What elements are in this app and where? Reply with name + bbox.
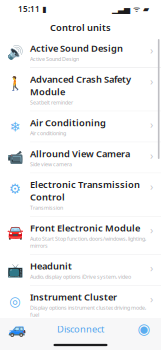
staticText: Seatbelt reminder xyxy=(30,99,73,106)
staticText: › xyxy=(150,43,153,57)
staticText: › xyxy=(150,74,153,88)
button[interactable]: 🚶 xyxy=(0,68,161,111)
staticText: Allround View Camera xyxy=(30,147,130,160)
button[interactable]: 📺 xyxy=(0,255,161,286)
staticText: Side view camera xyxy=(30,161,72,168)
staticText: ◎ xyxy=(9,294,21,309)
staticText: 📺 xyxy=(6,263,23,278)
button[interactable]: Vehicle xyxy=(2,318,32,340)
button[interactable]: ◎ xyxy=(0,286,161,331)
staticText: Disconnect xyxy=(57,323,104,335)
staticText: 🚙 xyxy=(8,321,26,337)
staticText: › xyxy=(150,223,153,237)
staticText: ▁▃▅ ᯤ ▰ xyxy=(112,4,149,14)
staticText: ❄ xyxy=(9,119,20,134)
staticText: 15:11 ▮ xyxy=(18,4,46,14)
button[interactable]: ❄ xyxy=(0,111,161,142)
staticText: Audio, display options iDrive system, vi… xyxy=(30,273,131,280)
button[interactable]: ⚙ xyxy=(0,173,161,217)
staticText: Auto Start Stop function, doors/windows,… xyxy=(30,235,146,249)
staticText: Air conditioning xyxy=(30,130,66,137)
staticText: Advanced Crash Safety Module xyxy=(30,73,131,98)
staticText: 🔊 xyxy=(6,45,23,60)
staticText: › xyxy=(150,292,153,306)
staticText: Front Electronic Module xyxy=(30,222,140,234)
staticText: ⚙ xyxy=(9,181,21,196)
staticText: Air Conditioning xyxy=(30,116,106,129)
staticText: Electronic Transmission Control xyxy=(30,178,140,203)
button[interactable]: 🚘 xyxy=(0,217,161,255)
staticText: ◉ xyxy=(137,321,150,337)
staticText: Control units xyxy=(50,21,111,34)
staticText: Integrated Chassis Management xyxy=(30,336,115,350)
staticText: 📹 xyxy=(6,150,23,165)
staticText: Active Sound Design xyxy=(30,42,123,54)
button[interactable]: Disconnect xyxy=(57,318,104,340)
staticText: Headunit xyxy=(30,260,72,272)
staticText: 🚘 xyxy=(6,225,23,240)
staticText: Active Sound Design xyxy=(30,55,79,62)
staticText: › xyxy=(150,148,153,162)
staticText: 🚶 xyxy=(6,76,23,91)
button[interactable]: 〽 xyxy=(0,331,161,350)
button[interactable]: 📹 xyxy=(0,142,161,173)
staticText: › xyxy=(150,117,153,131)
staticText: › xyxy=(150,261,153,275)
button[interactable]: 🔊 xyxy=(0,37,161,68)
staticText: › xyxy=(150,179,153,193)
staticText: Transmission xyxy=(30,204,63,211)
button[interactable]: Settings xyxy=(129,318,159,340)
staticText: Instrument Cluster xyxy=(30,291,117,303)
staticText: Display options instrument cluster, driv… xyxy=(30,304,146,325)
